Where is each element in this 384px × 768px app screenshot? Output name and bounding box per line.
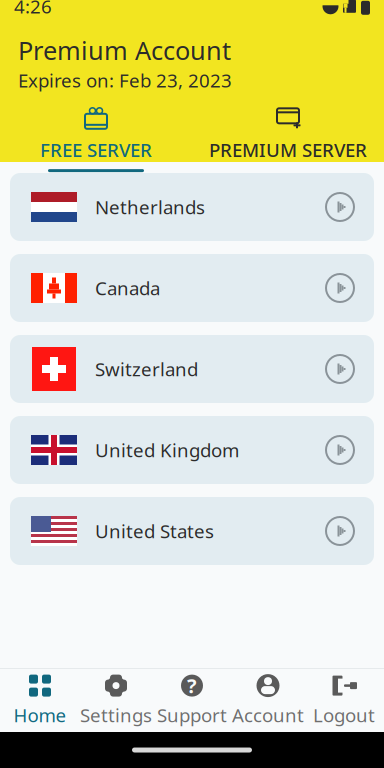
staticText: Settings — [80, 703, 152, 727]
button[interactable]: United States — [10, 497, 374, 565]
button[interactable]: Switzerland — [10, 335, 374, 403]
button[interactable]: FREE SERVER — [0, 109, 192, 171]
button[interactable]: Netherlands — [10, 173, 374, 241]
staticText: Expires on: Feb 23, 2023 — [18, 68, 232, 93]
staticText: Switzerland — [95, 357, 198, 381]
button[interactable]: Settings — [78, 671, 154, 729]
staticText: United Kingdom — [95, 438, 239, 462]
button[interactable]: PREMIUM SERVER — [192, 109, 384, 171]
button[interactable]: ? — [154, 671, 230, 729]
button[interactable]: Logout — [306, 671, 382, 729]
staticText: FREE SERVER — [40, 137, 152, 162]
staticText: United States — [95, 519, 214, 543]
staticText: Support — [157, 703, 227, 727]
staticText: Home — [13, 703, 66, 727]
button[interactable]: Canada — [10, 254, 374, 322]
staticText: Netherlands — [95, 195, 205, 219]
staticText: PREMIUM SERVER — [209, 137, 367, 162]
button[interactable]: United Kingdom — [10, 416, 374, 484]
staticText: Canada — [95, 276, 160, 300]
button[interactable]: Home — [2, 671, 78, 729]
staticText: ? — [187, 672, 197, 699]
staticText: Logout — [313, 703, 375, 727]
staticText: 4:26 — [14, 0, 52, 19]
staticText: Account — [232, 703, 304, 727]
button[interactable]: Account — [230, 671, 306, 729]
staticText: Premium Account — [18, 33, 231, 67]
